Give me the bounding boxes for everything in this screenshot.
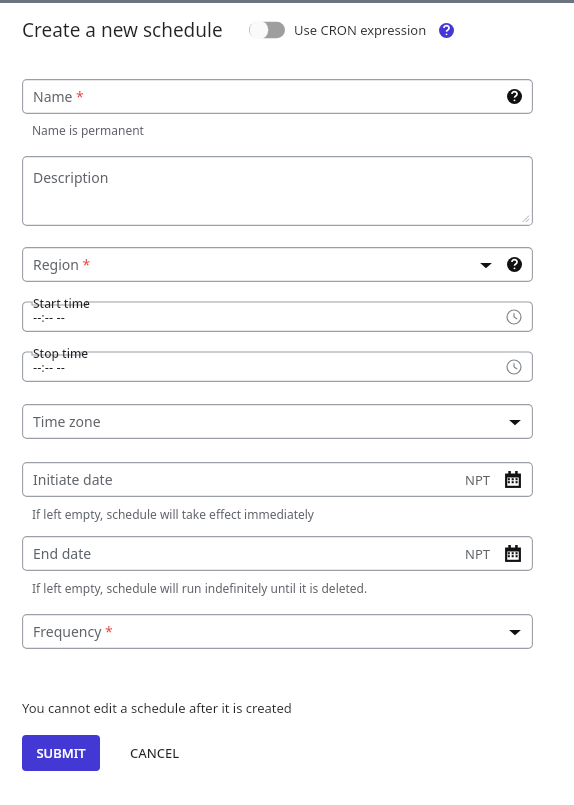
button[interactable]: CANCEL xyxy=(118,735,192,771)
staticText: Frequency * xyxy=(33,622,113,641)
staticText: Name * xyxy=(33,87,84,106)
button[interactable]: Use CRON expression xyxy=(249,20,454,40)
staticText: Stop time xyxy=(33,345,89,361)
staticText: Region * xyxy=(33,255,91,274)
button[interactable]: Choose date xyxy=(504,545,522,563)
staticText: Use CRON expression xyxy=(294,21,427,39)
button[interactable]: Choose time xyxy=(506,309,522,325)
button[interactable]: Frequency * xyxy=(22,614,533,649)
staticText: NPT xyxy=(465,545,490,563)
staticText: You cannot edit a schedule after it is c… xyxy=(22,699,292,717)
staticText: Name is permanent xyxy=(32,122,144,138)
staticText: Description xyxy=(33,168,109,187)
staticText: CANCEL xyxy=(130,744,180,762)
button[interactable]: Initiate date xyxy=(22,462,533,497)
staticText: Start time xyxy=(33,295,90,311)
button[interactable]: Help about name xyxy=(507,89,522,104)
button[interactable]: Choose date xyxy=(504,471,522,489)
staticText: --:-- -- xyxy=(33,358,506,376)
button[interactable]: SUBMIT xyxy=(22,735,100,771)
button[interactable]: Help about CRON expression xyxy=(439,23,454,38)
button[interactable]: Region * xyxy=(22,247,533,282)
staticText: Initiate date xyxy=(33,470,113,489)
staticText: Create a new schedule xyxy=(22,17,223,43)
staticText: Time zone xyxy=(33,412,101,431)
button[interactable]: Time zone xyxy=(22,404,533,439)
button[interactable]: Name * xyxy=(22,79,533,114)
button[interactable]: Description xyxy=(22,156,533,226)
button[interactable]: Open menu xyxy=(479,258,493,272)
staticText: NPT xyxy=(465,471,490,489)
button[interactable]: Choose time xyxy=(506,359,522,375)
button[interactable]: Start time xyxy=(22,294,533,332)
staticText: SUBMIT xyxy=(36,744,86,762)
button[interactable]: Stop time xyxy=(22,344,533,382)
button[interactable]: End date xyxy=(22,536,533,571)
staticText: If left empty, schedule will run indefin… xyxy=(32,580,368,596)
button[interactable]: Open menu xyxy=(508,625,522,639)
button[interactable]: Help about region xyxy=(507,257,522,272)
button[interactable]: Open menu xyxy=(508,415,522,429)
staticText: --:-- -- xyxy=(33,308,506,326)
staticText: End date xyxy=(33,544,92,563)
staticText: If left empty, schedule will take effect… xyxy=(32,506,314,522)
